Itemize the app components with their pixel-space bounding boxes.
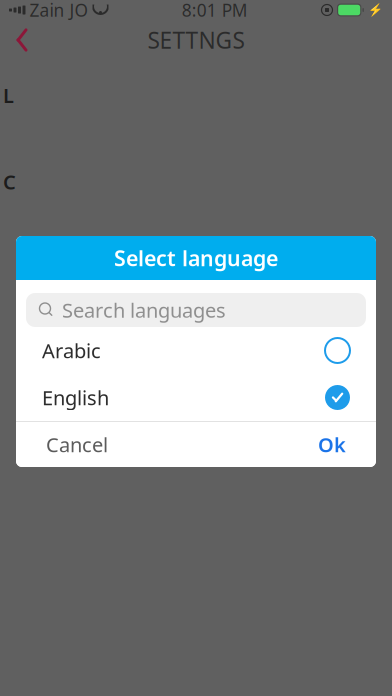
staticText: Cancel	[46, 431, 108, 458]
staticText: English	[42, 384, 109, 411]
staticText: Arabic	[42, 337, 101, 364]
staticText: Search languages	[62, 297, 226, 323]
button[interactable]: Arabic	[16, 327, 376, 374]
staticText: 8:01 PM	[182, 0, 248, 21]
staticText: ⚡	[368, 3, 383, 17]
staticText: Ok	[318, 431, 346, 458]
button[interactable]: English	[16, 374, 376, 421]
staticText: SETTNGS	[147, 25, 244, 55]
button[interactable]: Back	[0, 20, 44, 60]
staticText: Zain JO	[29, 0, 88, 21]
staticText: C	[3, 169, 16, 195]
staticText: Select language	[114, 244, 278, 272]
button[interactable]: Cancel	[26, 417, 128, 472]
button[interactable]: Ok	[298, 417, 366, 472]
staticText: L	[3, 82, 14, 109]
